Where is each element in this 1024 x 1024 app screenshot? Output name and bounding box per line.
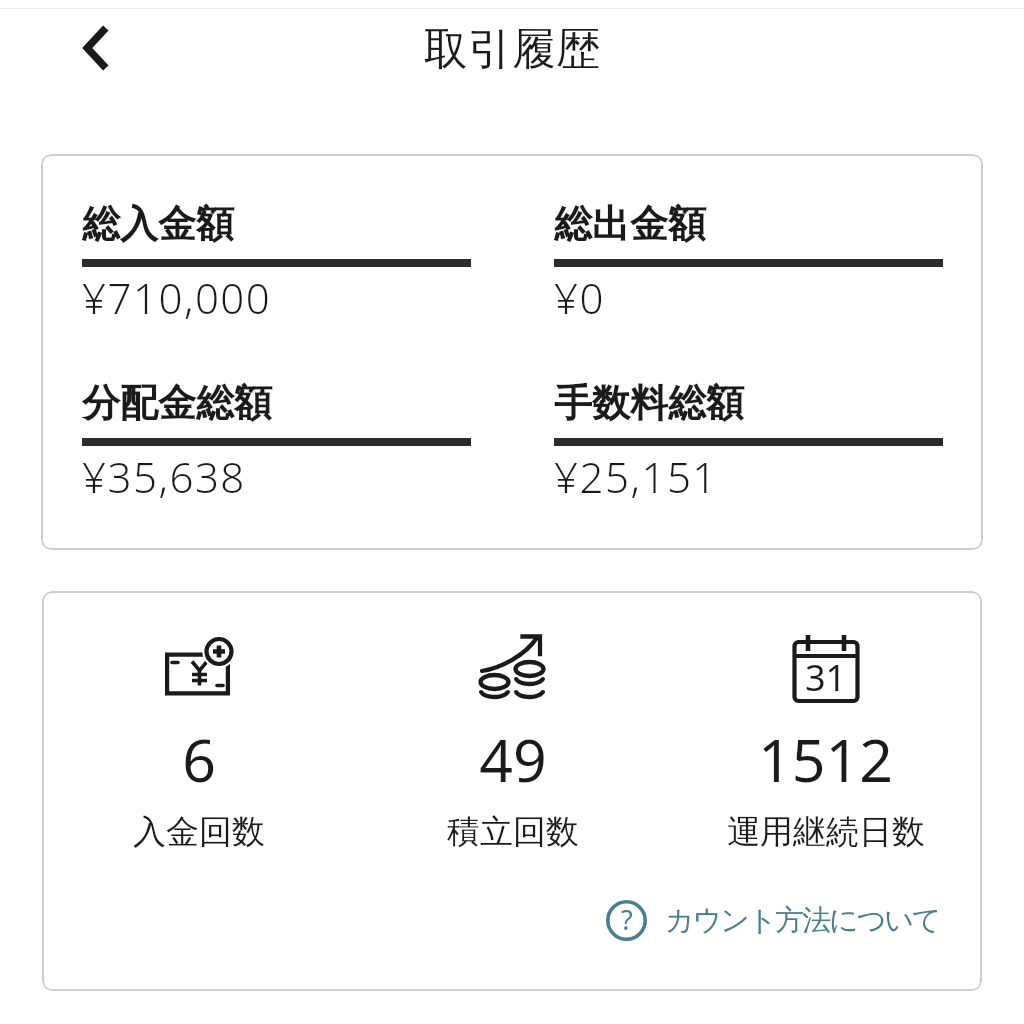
staticText: ¥35,638 — [82, 448, 246, 505]
staticText: 入金回数 — [133, 811, 265, 853]
staticText: 31 — [805, 653, 847, 702]
staticText: カウント方法について — [665, 902, 940, 939]
staticText: 積立回数 — [447, 811, 579, 853]
staticText: ¥710,000 — [82, 269, 272, 326]
staticText: 総出金額 — [554, 200, 706, 248]
button[interactable]: Back — [50, 9, 140, 96]
staticText: ¥0 — [554, 269, 605, 326]
staticText: 運用継続日数 — [727, 811, 925, 853]
staticText: 分配金総額 — [82, 379, 272, 427]
staticText: 6 — [182, 719, 216, 799]
staticText: 49 — [479, 719, 547, 799]
staticText: 1512 — [758, 719, 893, 799]
staticText: 取引履歴 — [424, 22, 600, 77]
staticText: 手数料総額 — [554, 379, 744, 427]
staticText: ? — [621, 901, 633, 938]
staticText: 総入金額 — [82, 200, 234, 248]
button[interactable]: ? — [602, 894, 944, 947]
staticText: ¥25,151 — [554, 448, 718, 505]
